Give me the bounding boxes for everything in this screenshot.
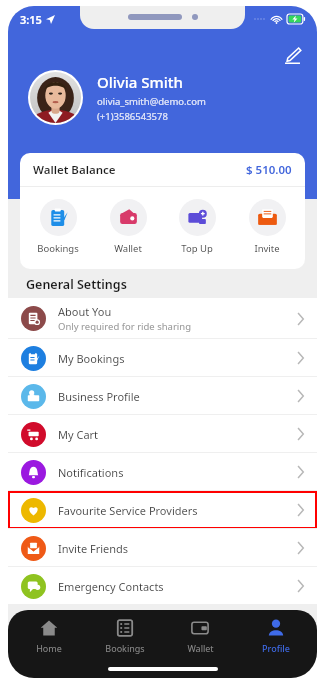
staticText: Invite xyxy=(254,242,280,255)
staticText: Olivia Smith xyxy=(97,72,183,92)
button[interactable]: Wallet xyxy=(165,615,235,658)
button[interactable]: My Bookings xyxy=(8,339,317,377)
button[interactable]: Bookings xyxy=(27,197,89,257)
button[interactable]: Invite xyxy=(236,197,298,257)
staticText: 3:15 xyxy=(20,12,42,27)
button[interactable]: Emergency Contacts xyxy=(8,567,317,605)
staticText: My Cart xyxy=(58,427,99,442)
button[interactable]: Wallet xyxy=(97,197,159,257)
staticText: Favourite Service Providers xyxy=(58,503,198,518)
staticText: Invite Friends xyxy=(58,541,129,556)
staticText: (+1)3586543578 xyxy=(97,110,168,123)
staticText: Home xyxy=(36,642,62,654)
staticText: About You xyxy=(58,304,112,319)
staticText: Top Up xyxy=(181,242,213,255)
staticText: My Bookings xyxy=(58,351,125,366)
staticText: Business Profile xyxy=(58,389,140,404)
button[interactable]: Profile xyxy=(241,615,311,658)
button[interactable]: Home xyxy=(14,615,84,658)
staticText: Wallet Balance xyxy=(33,162,116,178)
button[interactable]: Favourite Service Providers xyxy=(8,491,317,529)
staticText: Bookings xyxy=(105,642,145,654)
staticText: Profile xyxy=(262,642,290,654)
button[interactable]: Invite Friends xyxy=(8,529,317,567)
staticText: Wallet xyxy=(187,642,214,654)
staticText: General Settings xyxy=(26,276,127,293)
staticText: Emergency Contacts xyxy=(58,579,164,594)
button[interactable]: My Cart xyxy=(8,415,317,453)
button[interactable]: Notifications xyxy=(8,453,317,491)
button[interactable]: Top Up xyxy=(166,197,228,257)
staticText: Only required for ride sharing xyxy=(58,320,192,333)
button[interactable]: Bookings xyxy=(90,615,160,658)
button[interactable]: Edit profile xyxy=(277,40,307,70)
button[interactable]: Business Profile xyxy=(8,377,317,415)
staticText: Bookings xyxy=(37,242,79,255)
button[interactable]: About You xyxy=(8,298,317,339)
staticText: Notifications xyxy=(58,465,124,480)
staticText: $ 510.00 xyxy=(246,162,292,178)
staticText: Wallet xyxy=(114,242,142,255)
staticText: olivia_smith@demo.com xyxy=(97,95,206,108)
